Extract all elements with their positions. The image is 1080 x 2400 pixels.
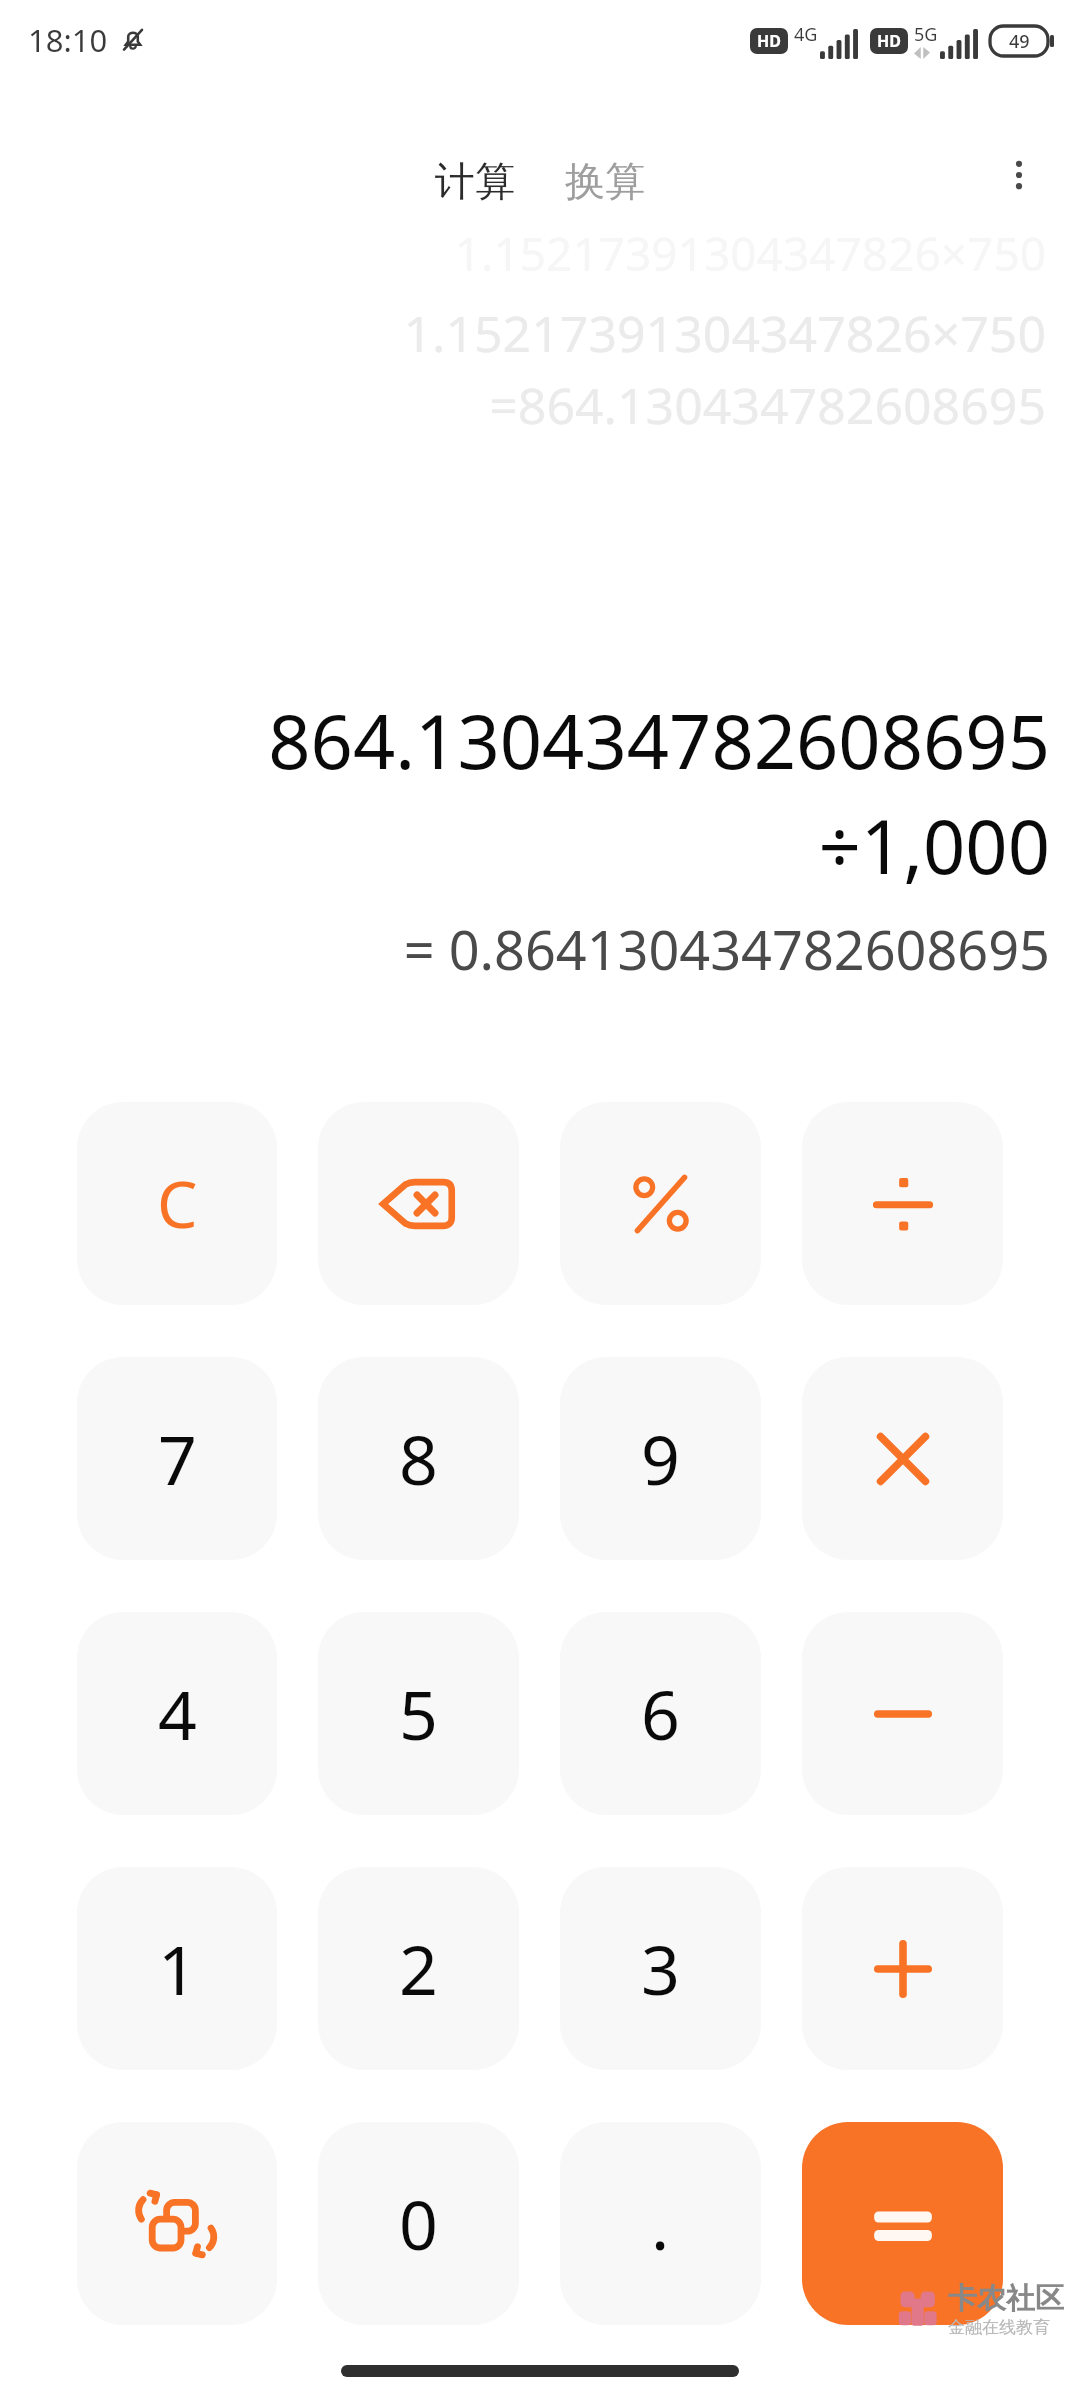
staticText: C — [157, 1160, 198, 1247]
button[interactable]: 换算 — [557, 150, 653, 212]
staticText: 换算 — [565, 156, 645, 206]
staticText: . — [651, 2177, 670, 2270]
button[interactable] — [802, 1357, 1003, 1560]
staticText: 18:10 — [28, 19, 108, 61]
staticText: 2 — [399, 1922, 438, 2015]
button[interactable]: 1 — [77, 1867, 277, 2070]
button[interactable] — [560, 1102, 761, 1305]
button[interactable]: 0 — [318, 2122, 519, 2325]
staticText: 8 — [399, 1412, 438, 1505]
button[interactable]: . — [560, 2122, 761, 2325]
button[interactable]: C — [77, 1102, 277, 1305]
staticText: ÷1,000 — [818, 795, 1050, 896]
button[interactable]: 7 — [77, 1357, 277, 1560]
staticText: HD — [757, 30, 781, 52]
staticText: 1 — [158, 1922, 197, 2015]
staticText: 7 — [158, 1412, 197, 1505]
staticText: 1.15217391304347826×750 — [454, 222, 1046, 285]
button[interactable]: More options — [976, 132, 1062, 218]
staticText: 864.130434782608695 — [268, 690, 1050, 791]
button[interactable]: 5 — [318, 1612, 519, 1815]
button[interactable]: 2 — [318, 1867, 519, 2070]
button[interactable]: 9 — [560, 1357, 761, 1560]
button[interactable]: 3 — [560, 1867, 761, 2070]
staticText: = 0.864130434782608695 — [403, 912, 1050, 986]
staticText: =864.130434782608695 — [489, 371, 1046, 439]
staticText: 5G — [914, 22, 938, 47]
button[interactable]: Convert units — [77, 2122, 277, 2325]
button[interactable] — [802, 1102, 1003, 1305]
staticText: 49 — [1009, 29, 1030, 54]
staticText: 卡农社区 — [948, 2280, 1064, 2317]
staticText: 9 — [641, 1412, 680, 1505]
staticText: 计算 — [435, 156, 515, 206]
staticText: 5 — [399, 1667, 438, 1760]
button[interactable] — [802, 1867, 1003, 2070]
staticText: 6 — [641, 1667, 680, 1760]
staticText: 1.15217391304347826×750 — [403, 299, 1046, 367]
staticText: 3 — [641, 1922, 680, 2015]
button[interactable]: 8 — [318, 1357, 519, 1560]
staticText: 4 — [158, 1667, 197, 1760]
button[interactable] — [802, 2122, 1003, 2325]
button[interactable]: 计算 — [427, 150, 523, 212]
staticText: 0 — [399, 2177, 438, 2270]
staticText: 金融在线教育 — [948, 2317, 1050, 2338]
staticText: HD — [877, 30, 901, 52]
staticText: 4G — [794, 22, 818, 47]
button[interactable]: 6 — [560, 1612, 761, 1815]
button[interactable]: 4 — [77, 1612, 277, 1815]
button[interactable]: Backspace — [318, 1102, 519, 1305]
button[interactable] — [802, 1612, 1003, 1815]
